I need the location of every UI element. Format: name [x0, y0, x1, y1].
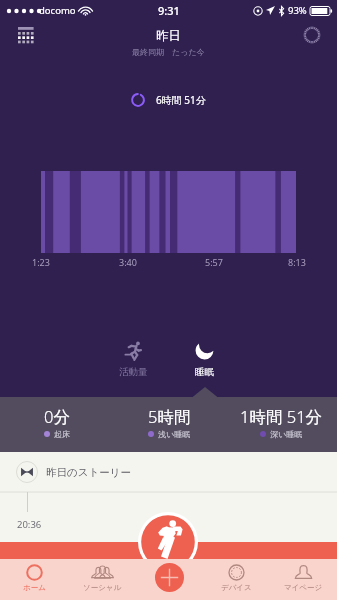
staticText: ソーシャル — [83, 583, 122, 592]
staticText: 1時間 51分 — [240, 405, 323, 428]
staticText: 昨日のストーリー — [46, 466, 131, 479]
staticText: 9:31 — [158, 3, 180, 18]
staticText: docomo — [39, 4, 76, 17]
staticText: 93% — [288, 4, 307, 17]
staticText: 5:57 — [205, 256, 223, 268]
button[interactable]: ソーシャル — [68, 559, 136, 600]
staticText: 起床 — [54, 429, 70, 439]
button[interactable]: 活動量 — [103, 341, 163, 378]
staticText: 睡眠 — [195, 366, 214, 378]
button[interactable]: 睡眠 — [174, 341, 234, 378]
button[interactable]: デバイス — [203, 559, 270, 600]
button[interactable]: Add — [155, 563, 184, 592]
button[interactable]: Running activity — [138, 512, 198, 572]
staticText: ホーム — [23, 583, 46, 592]
staticText: 8:13 — [288, 256, 306, 268]
staticText: 浅い睡眠 — [158, 429, 191, 439]
staticText: 3:40 — [119, 256, 137, 268]
staticText: 6時間 51分 — [156, 93, 206, 107]
button[interactable]: 昨日のストーリー — [0, 452, 337, 492]
button[interactable]: ホーム — [0, 559, 68, 600]
staticText: 20:36 — [17, 518, 42, 531]
staticText: デバイス — [221, 583, 252, 592]
staticText: マイページ — [284, 583, 323, 592]
staticText: 5時間 — [148, 405, 191, 428]
button[interactable]: Calendar — [10, 20, 43, 50]
staticText: 1:23 — [32, 256, 50, 268]
staticText: 昨日 — [156, 28, 181, 44]
staticText: 最終同期 たった今 — [132, 46, 205, 57]
staticText: 0分 — [44, 405, 70, 428]
button[interactable]: Sync — [297, 20, 327, 50]
button[interactable]: マイページ — [270, 559, 337, 600]
staticText: 深い睡眠 — [270, 429, 303, 439]
staticText: 活動量 — [119, 366, 148, 378]
